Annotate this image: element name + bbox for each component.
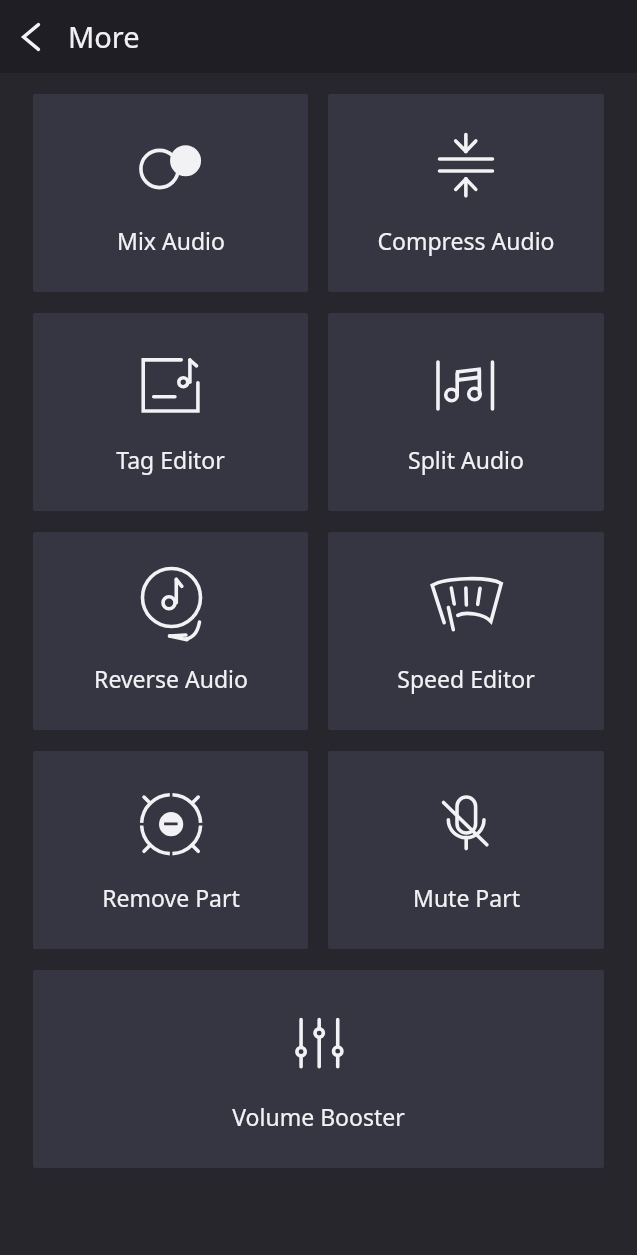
staticText: Mute Part [413, 882, 520, 913]
button[interactable]: Mix Audio [33, 94, 308, 292]
staticText: Speed Editor [397, 663, 535, 694]
button[interactable]: Tag Editor [33, 313, 308, 511]
staticText: More [68, 17, 140, 56]
staticText: Compress Audio [377, 225, 555, 256]
staticText: Volume Booster [232, 1101, 405, 1132]
button[interactable]: Reverse Audio [33, 532, 308, 730]
staticText: Tag Editor [116, 444, 225, 475]
button[interactable]: Compress Audio [328, 94, 604, 292]
button[interactable]: Split Audio [328, 313, 604, 511]
staticText: Split Audio [408, 444, 524, 475]
button[interactable]: Volume Booster [33, 970, 604, 1168]
button[interactable]: Mute Part [328, 751, 604, 949]
button[interactable]: Speed Editor [328, 532, 604, 730]
staticText: Remove Part [102, 882, 240, 913]
staticText: Mix Audio [117, 225, 225, 256]
staticText: Reverse Audio [94, 663, 248, 694]
button[interactable]: Back [0, 0, 63, 73]
button[interactable]: Remove Part [33, 751, 308, 949]
